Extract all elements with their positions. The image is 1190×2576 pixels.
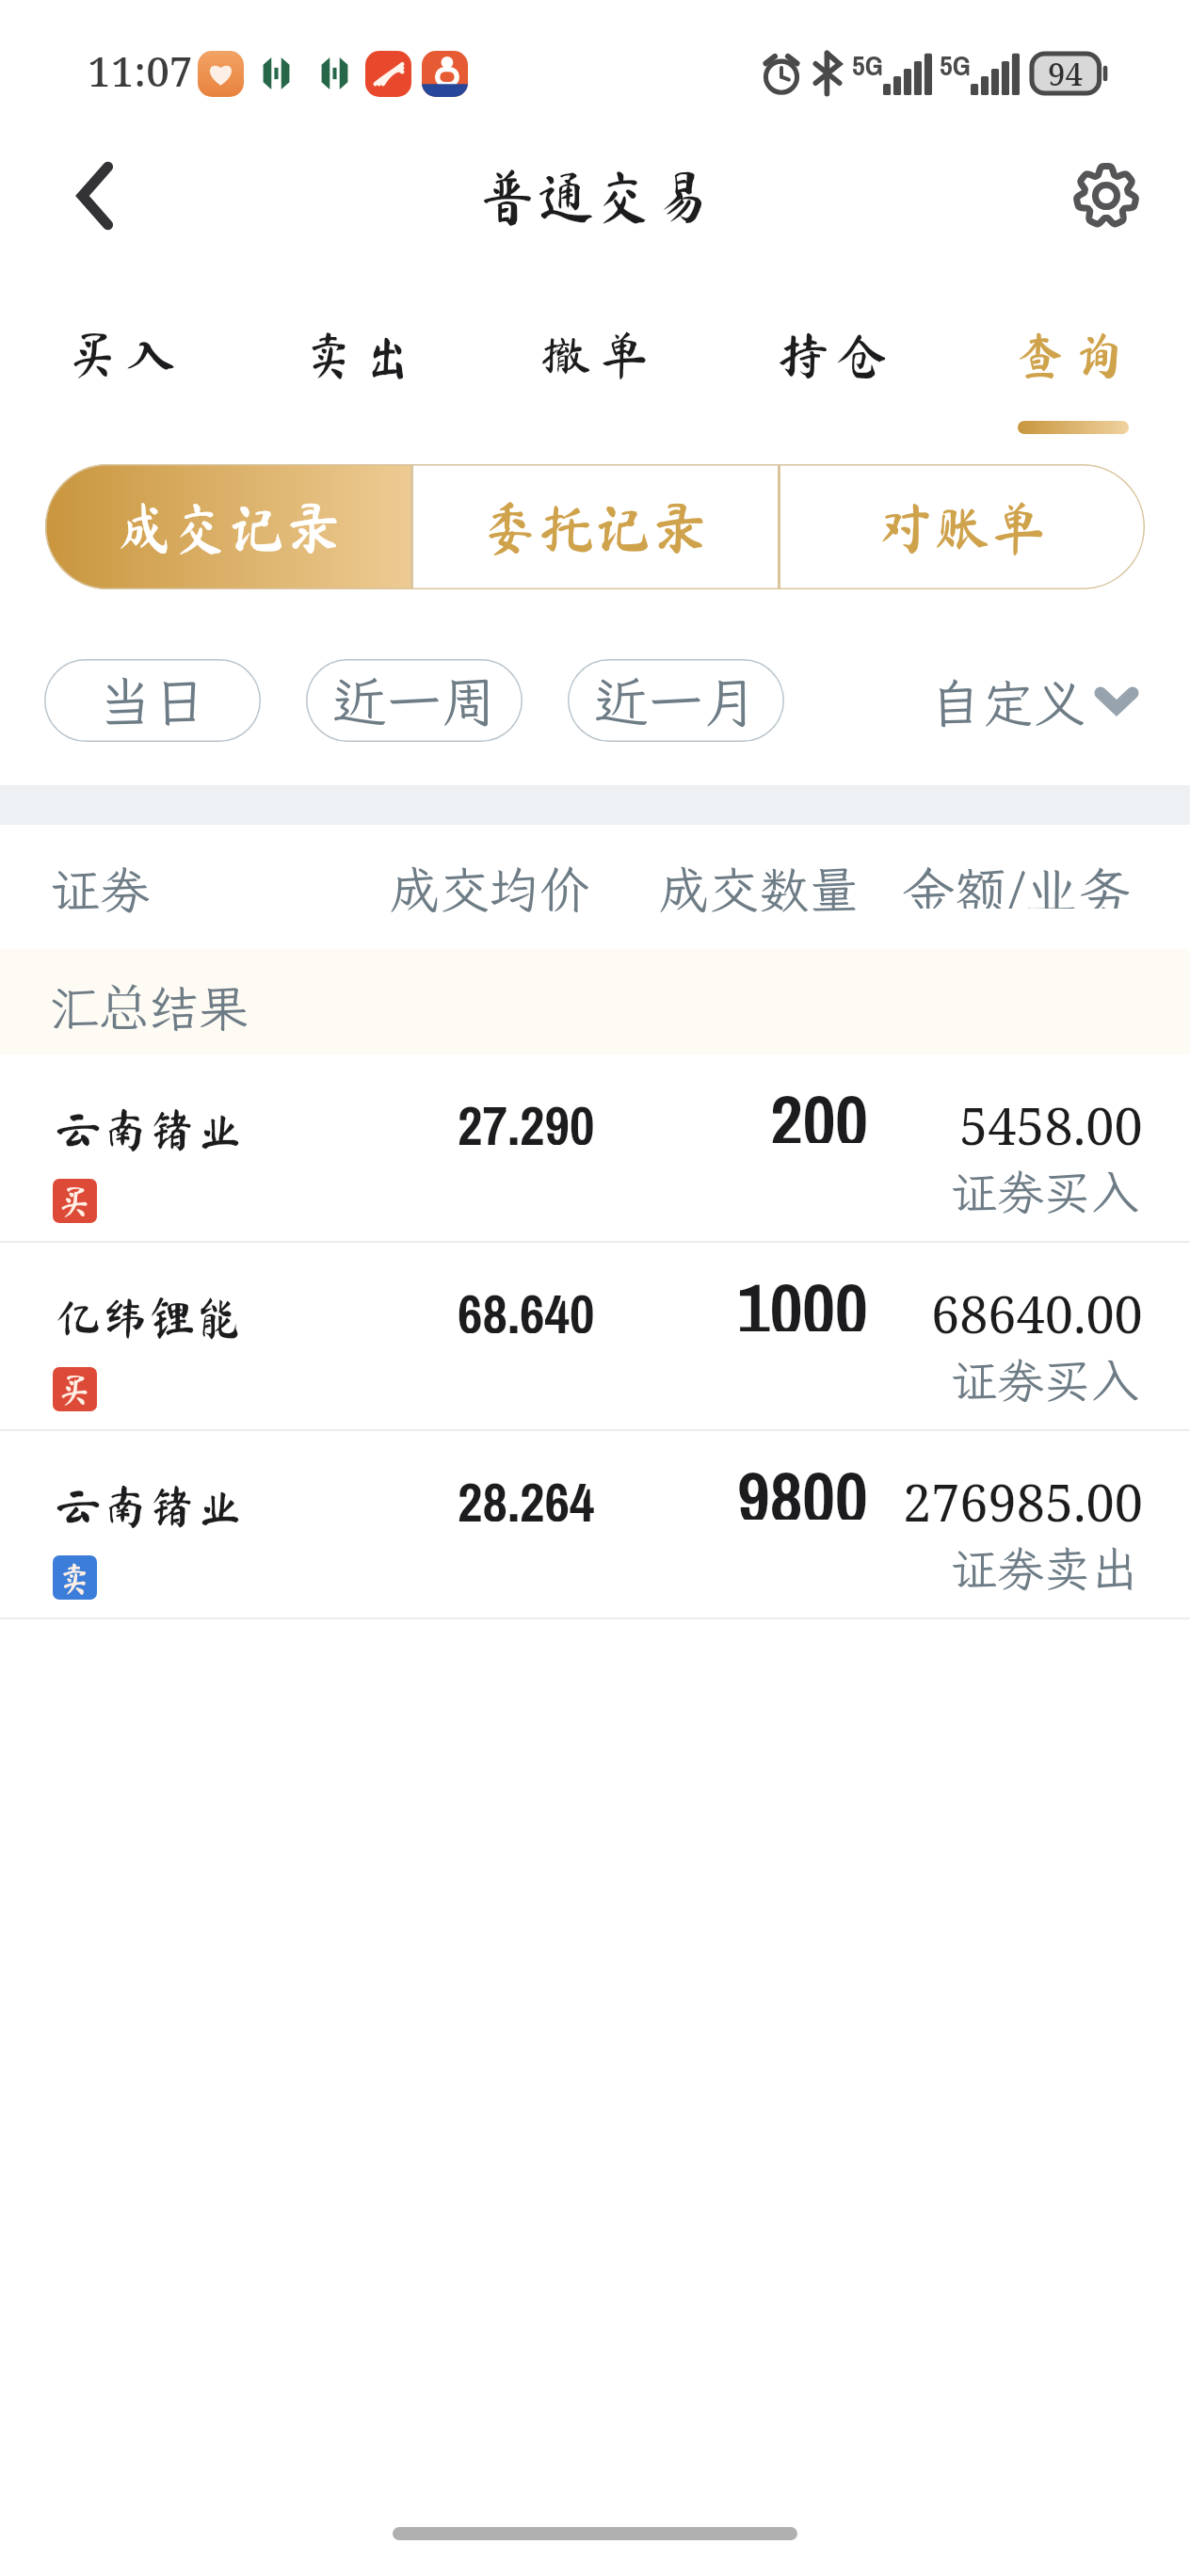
staticText: 28.264 [458,1465,595,1521]
staticText: 对账单 [877,499,1047,555]
staticText: 买入 [67,329,184,379]
staticText: 5G [940,46,971,84]
staticText: 卖出 [303,329,420,379]
button[interactable]: 自定义 [904,657,1149,736]
staticText: 查询 [1015,329,1132,379]
staticText: 68.640 [458,1277,595,1333]
staticText: 成交记录 [116,499,342,555]
staticText: 自定义 [930,668,1086,736]
staticText: 68640.00 [931,1279,1143,1348]
button[interactable]: 亿纬锂能 [0,1243,1190,1431]
staticText: 11:07 [88,42,193,99]
staticText: 当日 [98,665,208,736]
button[interactable]: 查询 [957,264,1190,452]
button[interactable]: 撤单 [482,264,716,452]
staticText: 5G [852,46,883,84]
staticText: 证券卖出 [950,1537,1138,1591]
button[interactable]: 卖出 [245,264,478,452]
staticText: 证券买入 [950,1348,1138,1403]
staticText: 5458.00 [959,1090,1143,1160]
staticText: 27.290 [458,1088,595,1145]
button[interactable]: 云南锗业 [0,1055,1190,1243]
staticText: 近一月 [594,665,759,736]
staticText: 持仓 [778,329,894,379]
button[interactable]: 近一月 [568,659,784,742]
staticText: 委托记录 [482,499,708,555]
staticText: 276985.00 [903,1467,1143,1537]
staticText: 证券买入 [950,1160,1138,1215]
staticText: 云南锗业 [55,1105,243,1152]
button[interactable]: 成交记录 [45,464,411,589]
staticText: 成交数量 [659,856,859,922]
staticText: 亿纬锂能 [55,1294,243,1341]
staticText: 证券 [50,856,150,922]
staticText: 买 [57,1373,92,1407]
button[interactable]: 近一周 [306,659,523,742]
button[interactable]: 云南锗业 [0,1431,1190,1619]
staticText: 云南锗业 [55,1482,243,1529]
staticText: 1000 [737,1260,868,1331]
staticText: 撤单 [540,329,657,379]
button[interactable]: 当日 [44,659,261,742]
button[interactable]: Settings [1064,153,1149,238]
button[interactable]: 持仓 [719,264,953,452]
staticText: 近一周 [332,665,497,736]
button[interactable]: Back [53,153,137,238]
staticText: 买 [57,1184,92,1218]
button[interactable]: 委托记录 [411,464,779,589]
staticText: 普通交易 [478,167,713,225]
staticText: 金额/业务 [902,856,1132,909]
staticText: 汇总结果 [49,974,249,1040]
staticText: 200 [770,1071,868,1143]
staticText: 成交均价 [390,856,589,922]
staticText: 94 [1048,53,1084,95]
staticText: 9800 [737,1448,868,1520]
button[interactable]: 对账单 [779,464,1145,589]
button[interactable]: 买入 [8,264,242,452]
staticText: 卖 [57,1561,92,1595]
